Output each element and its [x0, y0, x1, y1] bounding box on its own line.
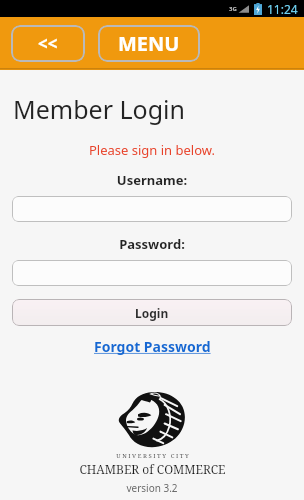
staticText: 11:24	[267, 1, 298, 17]
button[interactable]: Back	[11, 25, 85, 62]
staticText: <<	[38, 32, 58, 55]
button[interactable]: MENU	[98, 25, 200, 62]
staticText: MENU	[118, 30, 180, 57]
staticText: version 3.2	[0, 481, 304, 495]
staticText: 3G	[229, 5, 237, 13]
staticText: U N I V E R S I T Y C I T Y	[116, 452, 189, 460]
staticText: Password:	[0, 235, 304, 253]
staticText: Username:	[0, 171, 304, 189]
button[interactable]: Login	[12, 299, 292, 326]
staticText: Login	[135, 305, 169, 321]
staticText: Forgot Password	[94, 337, 211, 356]
staticText: Member Login	[13, 92, 185, 126]
button[interactable]: Text input	[12, 260, 292, 286]
staticText: CHAMBER of COMMERCE	[79, 461, 226, 477]
button[interactable]: Forgot Password	[88, 335, 217, 358]
button[interactable]: Text input	[12, 196, 292, 222]
staticText: Please sign in below.	[0, 141, 304, 159]
